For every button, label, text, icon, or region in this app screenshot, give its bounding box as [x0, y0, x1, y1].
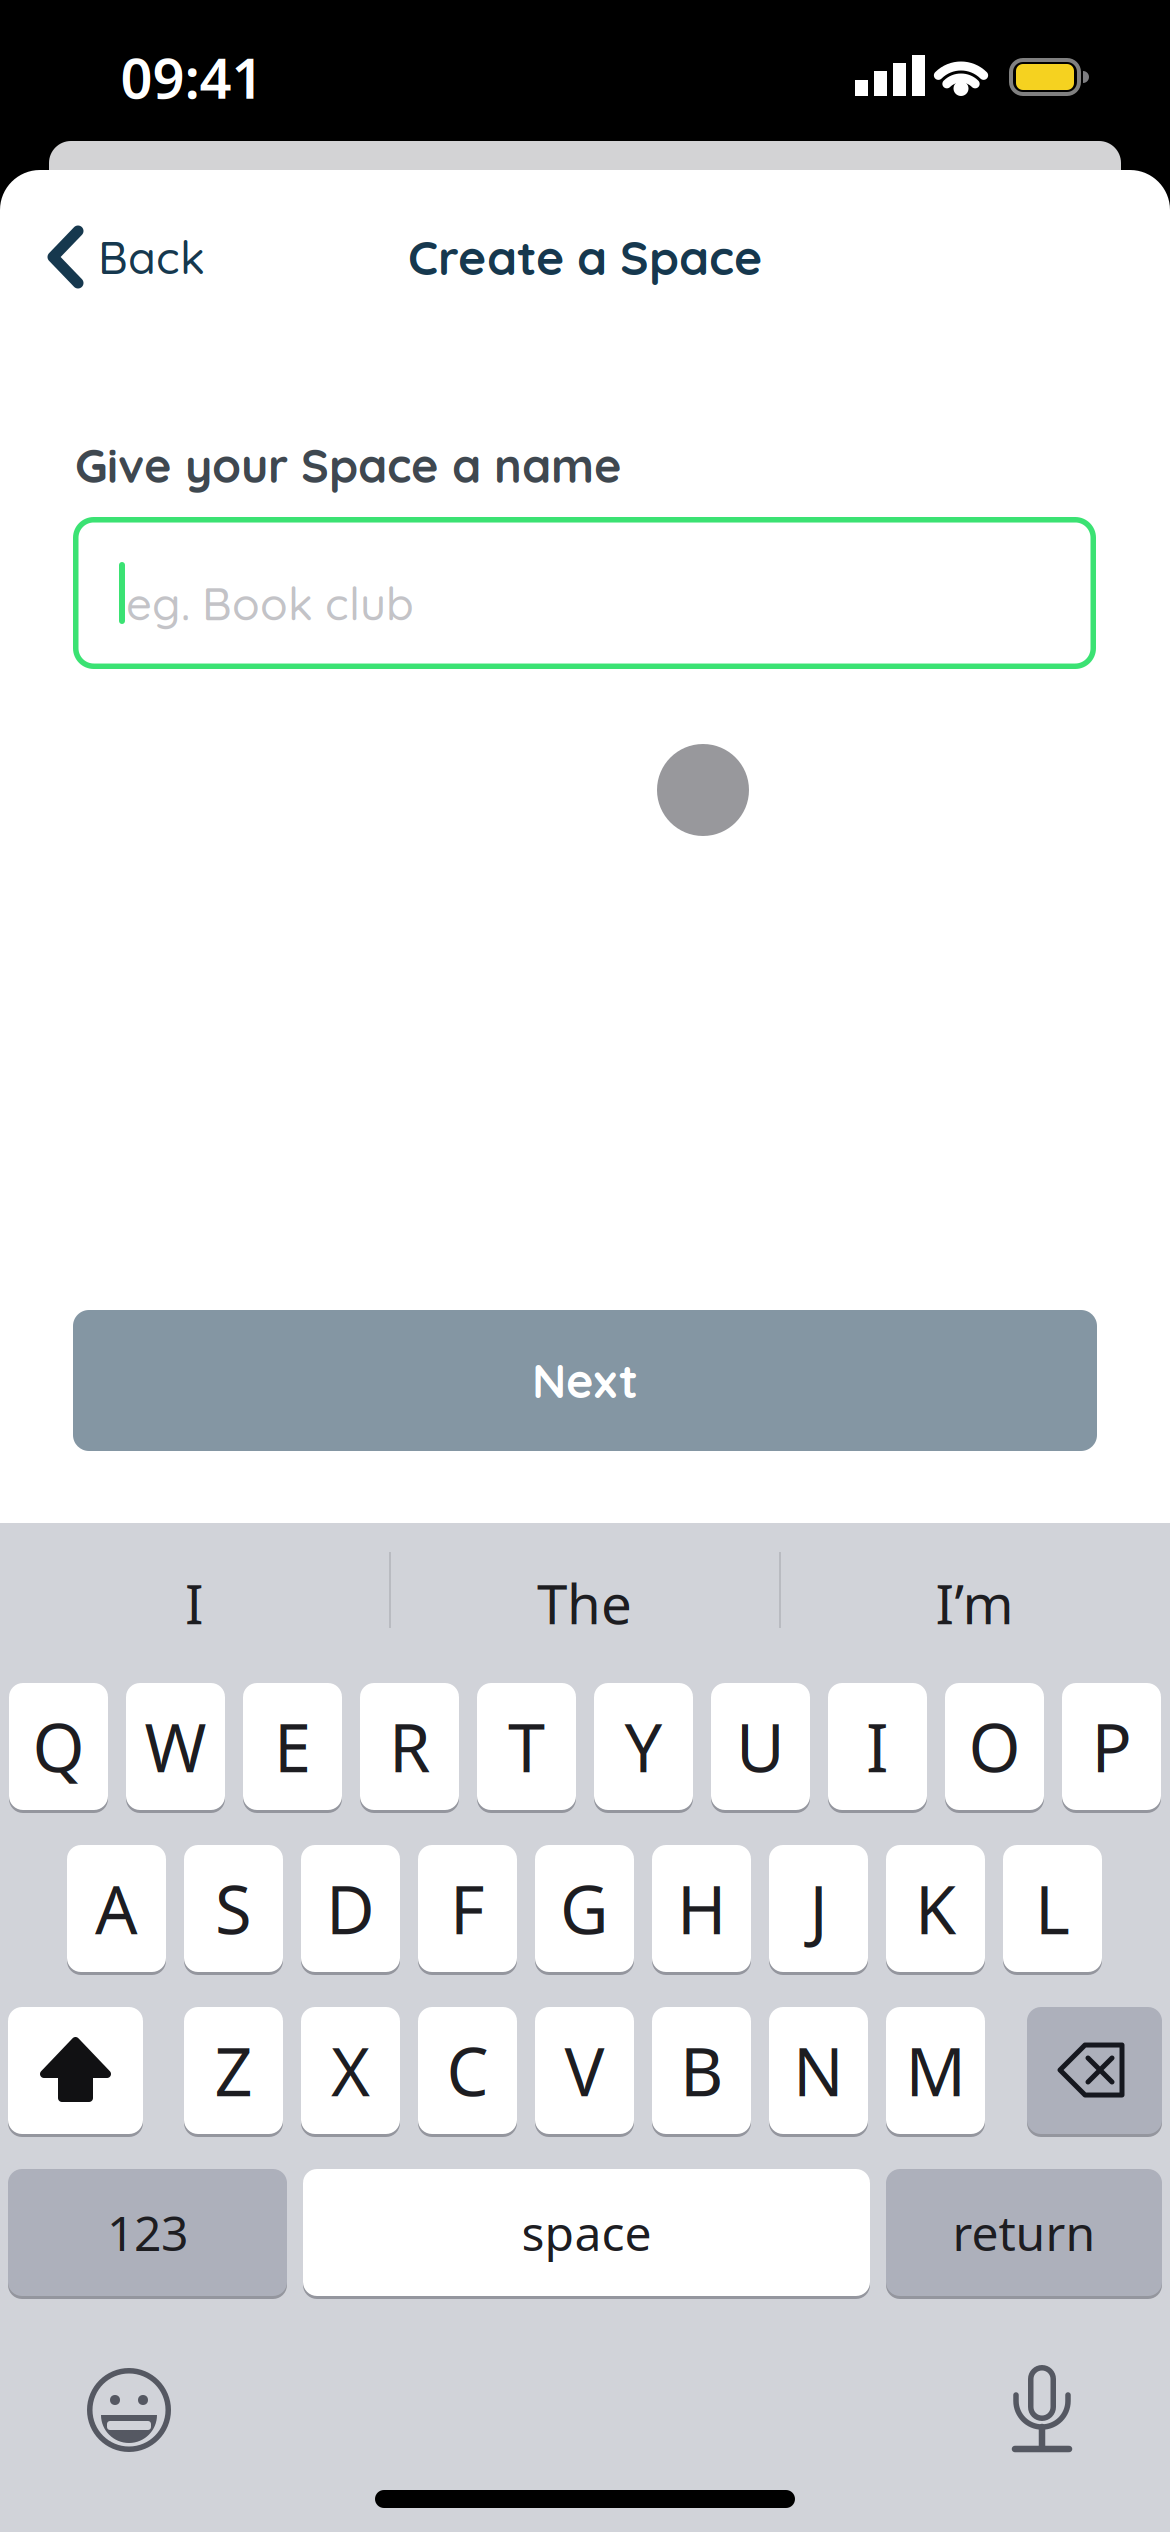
- staticText: C: [446, 2026, 488, 2115]
- staticText: E: [274, 1702, 311, 1791]
- staticText: G: [560, 1864, 609, 1953]
- button[interactable]: V: [535, 2007, 634, 2134]
- button[interactable]: I: [0, 1523, 389, 1683]
- button[interactable]: return: [886, 2169, 1162, 2296]
- button[interactable]: D: [301, 1845, 400, 1972]
- staticText: Create a Space: [408, 227, 762, 287]
- staticText: S: [215, 1864, 252, 1953]
- button[interactable]: L: [1003, 1845, 1102, 1972]
- button[interactable]: H: [652, 1845, 751, 1972]
- staticText: I: [866, 1702, 889, 1791]
- button[interactable]: R: [360, 1683, 459, 1810]
- button[interactable]: M: [886, 2007, 985, 2134]
- button[interactable]: Dictate: [1007, 2365, 1077, 2457]
- button[interactable]: N: [769, 2007, 868, 2134]
- staticText: Z: [214, 2026, 252, 2115]
- button[interactable]: O: [945, 1683, 1044, 1810]
- button[interactable]: F: [418, 1845, 517, 1972]
- staticText: X: [331, 2026, 370, 2115]
- staticText: U: [736, 1702, 785, 1791]
- staticText: B: [680, 2026, 723, 2115]
- staticText: Q: [32, 1702, 84, 1791]
- staticText: P: [1091, 1702, 1131, 1791]
- button[interactable]: Y: [594, 1683, 693, 1810]
- button[interactable]: 123: [8, 2169, 287, 2296]
- staticText: J: [809, 1864, 827, 1953]
- button[interactable]: Delete: [1027, 2007, 1162, 2134]
- button[interactable]: Next: [73, 1310, 1097, 1451]
- staticText: return: [952, 2201, 1095, 2264]
- staticText: 123: [107, 2201, 188, 2264]
- button[interactable]: I’m: [780, 1523, 1169, 1683]
- staticText: I’m: [935, 1567, 1013, 1639]
- button[interactable]: I: [828, 1683, 927, 1810]
- button[interactable]: E: [243, 1683, 342, 1810]
- button[interactable]: Back: [48, 226, 205, 288]
- button[interactable]: W: [126, 1683, 225, 1810]
- button[interactable]: J: [769, 1845, 868, 1972]
- staticText: F: [450, 1864, 485, 1953]
- button[interactable]: Z: [184, 2007, 283, 2134]
- button[interactable]: C: [418, 2007, 517, 2134]
- staticText: H: [677, 1864, 726, 1953]
- button[interactable]: X: [301, 2007, 400, 2134]
- button[interactable]: T: [477, 1683, 576, 1810]
- button[interactable]: space: [303, 2169, 870, 2296]
- button[interactable]: U: [711, 1683, 810, 1810]
- staticText: N: [793, 2026, 844, 2115]
- staticText: T: [508, 1702, 545, 1791]
- button[interactable]: Shift: [8, 2007, 143, 2134]
- staticText: 09:41: [120, 40, 263, 114]
- staticText: I: [185, 1567, 204, 1639]
- button[interactable]: Q: [9, 1683, 108, 1810]
- staticText: eg. Book club: [126, 575, 414, 632]
- staticText: W: [144, 1702, 206, 1791]
- staticText: The: [537, 1567, 632, 1639]
- staticText: O: [968, 1702, 1020, 1791]
- staticText: Y: [624, 1702, 662, 1791]
- staticText: Back: [98, 229, 205, 285]
- staticText: R: [389, 1702, 430, 1791]
- staticText: M: [905, 2026, 965, 2115]
- button[interactable]: G: [535, 1845, 634, 1972]
- button[interactable]: The: [390, 1523, 779, 1683]
- staticText: L: [1035, 1864, 1070, 1953]
- button[interactable]: A: [67, 1845, 166, 1972]
- button[interactable]: B: [652, 2007, 751, 2134]
- button[interactable]: Space name: [73, 517, 1096, 669]
- button[interactable]: S: [184, 1845, 283, 1972]
- staticText: Next: [532, 1351, 638, 1410]
- staticText: space: [521, 2201, 651, 2264]
- staticText: V: [564, 2026, 604, 2115]
- button[interactable]: K: [886, 1845, 985, 1972]
- staticText: Give your Space a name: [75, 436, 622, 494]
- staticText: K: [915, 1864, 956, 1953]
- button[interactable]: Emoji: [87, 2368, 171, 2452]
- button[interactable]: P: [1062, 1683, 1161, 1810]
- staticText: D: [326, 1864, 375, 1953]
- staticText: A: [95, 1864, 138, 1953]
